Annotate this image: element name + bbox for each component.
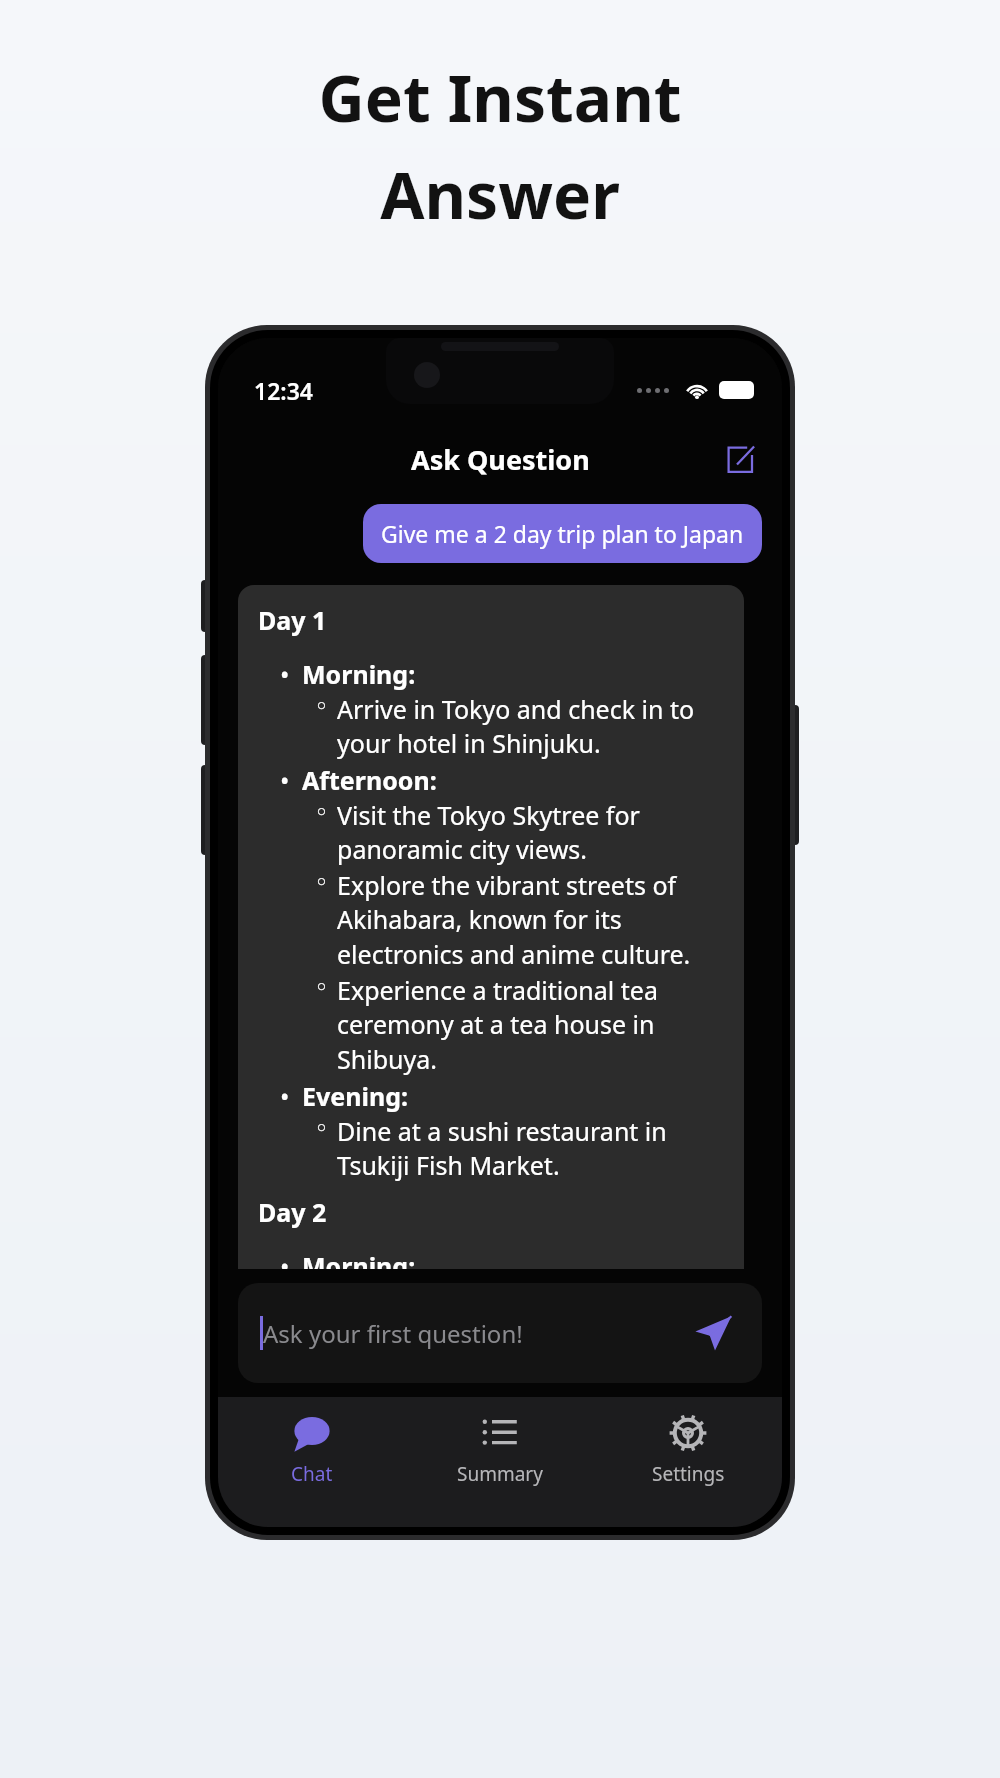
staticText: •: [280, 657, 290, 691]
button[interactable]: Chat: [218, 1397, 406, 1527]
staticText: Ask Question: [411, 441, 590, 478]
staticText: 12:34: [254, 375, 313, 406]
staticText: Afternoon:: [302, 763, 437, 797]
button[interactable]: Send: [686, 1306, 740, 1360]
staticText: Visit the Tokyo Skytree for panoramic ci…: [337, 798, 734, 867]
staticText: Get Instant: [318, 54, 682, 141]
staticText: •: [280, 1249, 290, 1269]
staticText: •: [280, 1079, 290, 1113]
staticText: Summary: [457, 1461, 543, 1487]
button[interactable]: Ask your first question!: [238, 1283, 762, 1383]
staticText: ◦: [314, 1114, 329, 1143]
staticText: Settings: [652, 1461, 725, 1487]
staticText: ◦: [314, 973, 329, 1002]
staticText: Experience a traditional tea ceremony at…: [337, 973, 734, 1077]
staticText: •: [280, 763, 290, 797]
staticText: ◦: [314, 868, 329, 897]
staticText: Chat: [291, 1461, 333, 1487]
button[interactable]: New chat: [716, 435, 764, 483]
staticText: Give me a 2 day trip plan to Japan: [381, 518, 744, 549]
staticText: Day 1: [258, 603, 327, 637]
staticText: Arrive in Tokyo and check in to your hot…: [337, 692, 734, 761]
button[interactable]: Summary: [406, 1397, 594, 1527]
staticText: Ask your first question!: [263, 1317, 523, 1350]
staticText: ◦: [314, 692, 329, 721]
staticText: Answer: [380, 151, 620, 238]
staticText: ◦: [314, 798, 329, 827]
staticText: Morning:: [302, 1249, 416, 1269]
staticText: Dine at a sushi restaurant in Tsukiji Fi…: [337, 1114, 734, 1183]
staticText: Day 2: [258, 1195, 327, 1229]
button[interactable]: Settings: [594, 1397, 782, 1527]
button[interactable]: Day 1: [238, 585, 744, 1269]
staticText: Evening:: [302, 1079, 409, 1113]
staticText: Morning:: [302, 657, 416, 691]
staticText: Explore the vibrant streets of Akihabara…: [337, 868, 734, 972]
button[interactable]: Give me a 2 day trip plan to Japan: [363, 504, 762, 563]
